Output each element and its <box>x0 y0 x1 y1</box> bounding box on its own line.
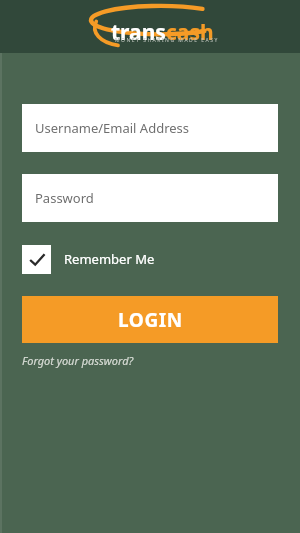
button[interactable]: Forgot your password? <box>22 351 134 370</box>
staticText: Username/Email Address <box>35 119 190 137</box>
staticText: cash <box>166 18 214 47</box>
staticText: Forgot your password? <box>22 353 134 368</box>
button[interactable]: Password <box>22 174 278 222</box>
staticText: Remember Me <box>64 250 155 268</box>
button[interactable]: LOGIN <box>22 296 278 343</box>
staticText: Password <box>35 189 94 207</box>
staticText: MONEY SHARING MADE EASY <box>115 37 219 44</box>
button[interactable]: Username/Email Address <box>22 104 278 152</box>
button[interactable]: Remember Me <box>22 244 155 274</box>
staticText: trans <box>111 18 166 47</box>
staticText: LOGIN <box>118 307 183 333</box>
